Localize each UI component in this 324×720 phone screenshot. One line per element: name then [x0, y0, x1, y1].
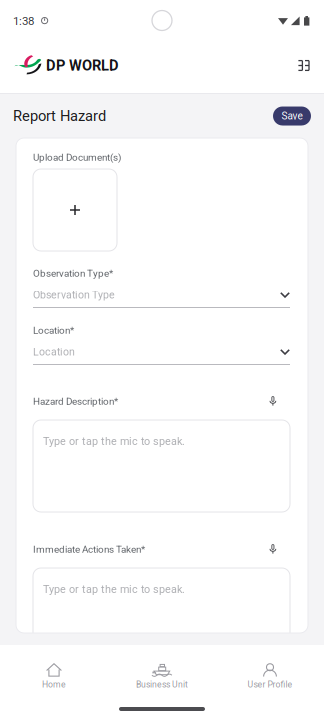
staticText: Observation Type*	[33, 268, 113, 279]
button[interactable]: Location	[33, 336, 290, 365]
button[interactable]: Upload documents	[33, 169, 117, 251]
staticText: Home	[42, 679, 66, 690]
staticText: Hazard Description*	[33, 396, 118, 407]
staticText: 1:38	[13, 14, 34, 28]
staticText: Upload Document(s)	[33, 152, 121, 163]
button[interactable]: Home	[0, 661, 108, 691]
staticText: DP WORLD	[46, 57, 119, 74]
button[interactable]: Type or tap the mic to speak.	[33, 420, 290, 512]
staticText: Immediate Actions Taken*	[33, 544, 145, 555]
staticText: Location*	[33, 325, 74, 336]
button[interactable]: Save	[273, 106, 311, 125]
button[interactable]: Type or tap the mic to speak.	[33, 568, 290, 660]
staticText: Observation Type	[33, 289, 115, 301]
button[interactable]: Menu	[298, 60, 310, 71]
button[interactable]: Observation Type	[33, 279, 290, 308]
staticText: Save	[281, 110, 302, 122]
button[interactable]: Dictate Hazard Description*	[269, 396, 277, 407]
staticText: Location	[33, 346, 75, 358]
button[interactable]: User Profile	[216, 661, 324, 691]
button[interactable]: Business Unit	[108, 661, 216, 691]
staticText: Type or tap the mic to speak.	[43, 583, 185, 596]
staticText: Type or tap the mic to speak.	[43, 435, 185, 448]
staticText: Report Hazard	[13, 107, 106, 125]
button[interactable]: Dictate Immediate Actions Taken*	[269, 544, 277, 555]
staticText: Business Unit	[136, 679, 188, 690]
staticText: User Profile	[247, 679, 292, 690]
